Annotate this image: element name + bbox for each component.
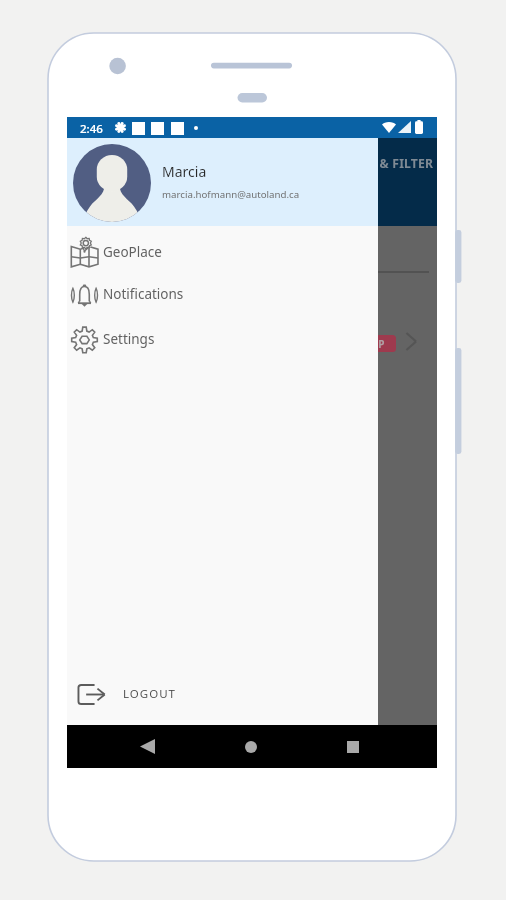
button[interactable]: Back bbox=[125, 725, 169, 768]
staticText: LOGOUT bbox=[123, 686, 176, 702]
staticText: 2:46 bbox=[80, 121, 103, 137]
staticText: GeoPlace bbox=[103, 243, 162, 261]
button[interactable]: Notifications bbox=[67, 273, 378, 315]
staticText: TOP bbox=[364, 337, 385, 351]
button[interactable]: Home bbox=[229, 725, 273, 768]
button[interactable]: GeoPlace bbox=[67, 231, 378, 273]
button[interactable]: LOGOUT bbox=[67, 672, 378, 716]
staticText: Marcia bbox=[162, 162, 207, 181]
staticText: marcia.hofmann@autoland.ca bbox=[162, 188, 300, 201]
staticText: Settings bbox=[103, 330, 155, 348]
button[interactable]: Marcia bbox=[67, 138, 378, 226]
button[interactable]: Recent apps bbox=[331, 725, 375, 768]
button[interactable]: Settings bbox=[67, 318, 378, 360]
staticText: Notifications bbox=[103, 285, 184, 303]
staticText: SORT & FILTER bbox=[344, 155, 434, 172]
